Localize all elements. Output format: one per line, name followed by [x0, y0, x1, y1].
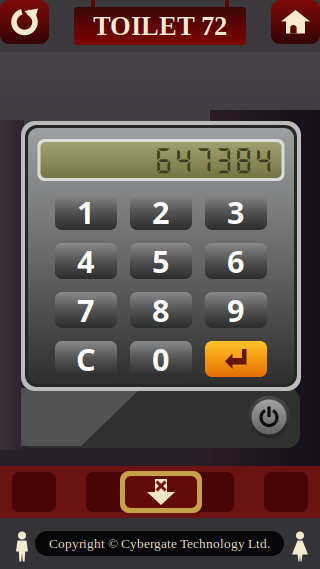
staticText: 3 [227, 192, 245, 232]
button[interactable]: C [55, 341, 117, 377]
staticText: 9 [227, 290, 245, 330]
button[interactable]: 7 [55, 292, 117, 328]
button[interactable]: 4 [55, 243, 117, 279]
staticText: 6 [227, 241, 245, 281]
staticText: C [76, 339, 96, 379]
button[interactable]: 8 [130, 292, 192, 328]
button[interactable]: 3 [205, 194, 267, 230]
button[interactable]: Drop item [120, 471, 202, 513]
button[interactable]: Inventory slot [12, 472, 56, 512]
button[interactable]: 2 [130, 194, 192, 230]
button[interactable]: 1 [55, 194, 117, 230]
staticText: 4 [77, 241, 95, 281]
button[interactable]: Enter [205, 341, 267, 377]
staticText: 647384 [153, 144, 273, 176]
staticText: TOILET 72 [93, 11, 227, 41]
staticText: 0 [152, 339, 170, 379]
button[interactable]: 9 [205, 292, 267, 328]
staticText: Copyright © Cybergate Technology Ltd. [49, 536, 270, 551]
button[interactable]: Home [271, 0, 320, 44]
button[interactable]: 0 [130, 341, 192, 377]
staticText: 2 [152, 192, 170, 232]
staticText: 8 [152, 290, 170, 330]
button[interactable]: Inventory slot [190, 472, 234, 512]
button[interactable]: 5 [130, 243, 192, 279]
button[interactable]: Restart [0, 0, 49, 44]
button[interactable]: Inventory slot [264, 472, 308, 512]
button[interactable]: 6 [205, 243, 267, 279]
button[interactable]: TOILET 72 [74, 7, 246, 45]
staticText: 1 [77, 192, 95, 232]
button[interactable]: Inventory slot [86, 472, 130, 512]
button[interactable]: Power [248, 396, 290, 438]
staticText: 7 [77, 290, 95, 330]
staticText: 5 [152, 241, 170, 281]
